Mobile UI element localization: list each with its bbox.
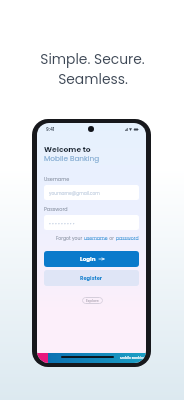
staticText: Explore bbox=[86, 298, 99, 303]
staticText: Simple. Secure. bbox=[40, 49, 145, 68]
staticText: Welcome to bbox=[44, 144, 91, 155]
staticText: Login bbox=[80, 255, 96, 263]
button[interactable]: password bbox=[116, 235, 139, 241]
button[interactable]: username bbox=[84, 235, 108, 241]
staticText: yourname@gmail.com bbox=[49, 190, 100, 196]
button[interactable]: Explore bbox=[82, 297, 103, 304]
staticText: 9:41 bbox=[46, 126, 55, 132]
button[interactable]: • • • • • • • • • bbox=[44, 215, 139, 230]
staticText: Password bbox=[44, 206, 68, 213]
staticText: Username bbox=[44, 176, 70, 183]
staticText: Mobile Banking bbox=[44, 153, 100, 163]
staticText: Mobile Banking bbox=[120, 356, 146, 360]
staticText: or bbox=[108, 235, 116, 241]
staticText: Seamless. bbox=[58, 69, 128, 88]
staticText: Register bbox=[80, 275, 103, 282]
staticText: • • • • • • • • • bbox=[49, 220, 75, 226]
button[interactable]: Login bbox=[44, 251, 139, 267]
button[interactable]: Register bbox=[44, 270, 139, 286]
staticText: Forgot your bbox=[56, 235, 84, 241]
button[interactable]: yourname@gmail.com bbox=[44, 185, 139, 200]
